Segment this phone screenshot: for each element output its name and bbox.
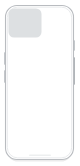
button[interactable]: Phone device preview — [0, 0, 80, 166]
button[interactable]: Preview content — [0, 0, 33, 29]
